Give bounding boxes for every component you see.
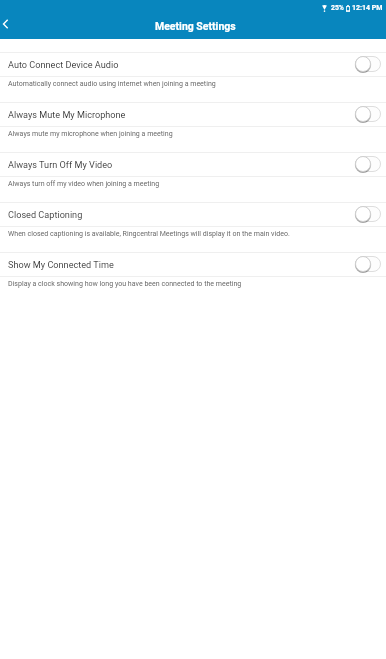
staticText: 12:14 PM: [352, 4, 383, 12]
button[interactable]: Always Turn Off My Video: [0, 153, 386, 176]
staticText: Meeting Settings: [155, 20, 236, 32]
staticText: Closed Captioning: [8, 210, 83, 221]
button[interactable]: Toggle: [351, 205, 381, 225]
staticText: Always turn off my video when joining a …: [8, 179, 160, 187]
staticText: Automatically connect audio using intern…: [8, 79, 216, 87]
button[interactable]: Toggle: [351, 55, 381, 75]
button[interactable]: Always Mute My Microphone: [0, 103, 386, 126]
staticText: Display a clock showing how long you hav…: [8, 279, 242, 287]
button[interactable]: Toggle: [351, 155, 381, 175]
staticText: Always Turn Off My Video: [8, 160, 113, 171]
staticText: Auto Connect Device Audio: [8, 60, 119, 71]
staticText: 25%: [331, 4, 344, 12]
staticText: Show My Connected Time: [8, 260, 114, 271]
button[interactable]: Auto Connect Device Audio: [0, 53, 386, 76]
button[interactable]: Closed Captioning: [0, 203, 386, 226]
staticText: Always mute my microphone when joining a…: [8, 129, 173, 137]
staticText: Always Mute My Microphone: [8, 110, 126, 121]
button[interactable]: Back: [0, 15, 22, 39]
button[interactable]: Show My Connected Time: [0, 253, 386, 276]
button[interactable]: Toggle: [351, 105, 381, 125]
button[interactable]: Toggle: [351, 255, 381, 275]
staticText: When closed captioning is available, Rin…: [8, 229, 290, 237]
